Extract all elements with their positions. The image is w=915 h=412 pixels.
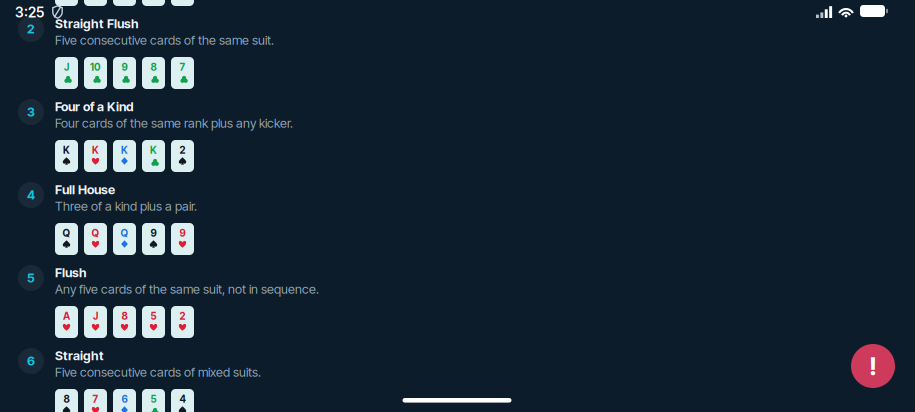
staticText: Q — [62, 227, 70, 239]
button[interactable]: 1 — [0, 0, 915, 12]
staticText: Full House — [55, 182, 115, 197]
staticText: K — [92, 144, 99, 156]
staticText: K — [121, 144, 128, 156]
staticText: 2 — [27, 21, 35, 37]
staticText: 8 — [121, 310, 127, 322]
staticText: 5 — [150, 310, 156, 322]
staticText: Any five cards of the same suit, not in … — [55, 281, 319, 297]
staticText: 7 — [179, 61, 185, 73]
staticText: Q — [120, 227, 128, 239]
staticText: Q — [91, 227, 99, 239]
button[interactable]: 3 — [0, 95, 915, 178]
staticText: 9 — [150, 227, 156, 239]
staticText: 5 — [27, 270, 35, 286]
staticText: 3 — [27, 104, 35, 120]
staticText: 9 — [179, 227, 185, 239]
staticText: Flush — [55, 265, 87, 280]
staticText: K — [150, 144, 157, 156]
staticText: 3:25 — [15, 4, 44, 21]
button[interactable]: 4 — [0, 178, 915, 261]
button[interactable]: 6 — [0, 344, 915, 412]
staticText: 8 — [150, 61, 156, 73]
staticText: J — [64, 61, 69, 73]
staticText: Three of a kind plus a pair. — [55, 198, 197, 214]
staticText: 2 — [179, 310, 185, 322]
staticText: Four cards of the same rank plus any kic… — [55, 115, 293, 131]
staticText: Five consecutive cards of the same suit. — [55, 32, 274, 48]
button[interactable]: Report an issue — [851, 344, 895, 388]
staticText: 7 — [92, 393, 98, 405]
button[interactable]: 5 — [0, 261, 915, 344]
staticText: 8 — [63, 393, 69, 405]
staticText: Straight Flush — [55, 16, 139, 31]
staticText: Four of a Kind — [55, 99, 134, 114]
staticText: 2 — [179, 144, 185, 156]
staticText: 4 — [179, 393, 185, 405]
staticText: 10 — [90, 61, 101, 73]
staticText: A — [63, 310, 70, 322]
button[interactable]: 2 — [0, 12, 915, 95]
staticText: 6 — [121, 393, 127, 405]
staticText: ! — [869, 351, 877, 381]
staticText: Five consecutive cards of mixed suits. — [55, 364, 261, 380]
staticText: K — [63, 144, 70, 156]
staticText: 5 — [150, 393, 156, 405]
staticText: 6 — [27, 353, 35, 369]
staticText: Straight — [55, 348, 104, 363]
staticText: 4 — [27, 187, 35, 203]
staticText: J — [93, 310, 98, 322]
staticText: 9 — [121, 61, 127, 73]
